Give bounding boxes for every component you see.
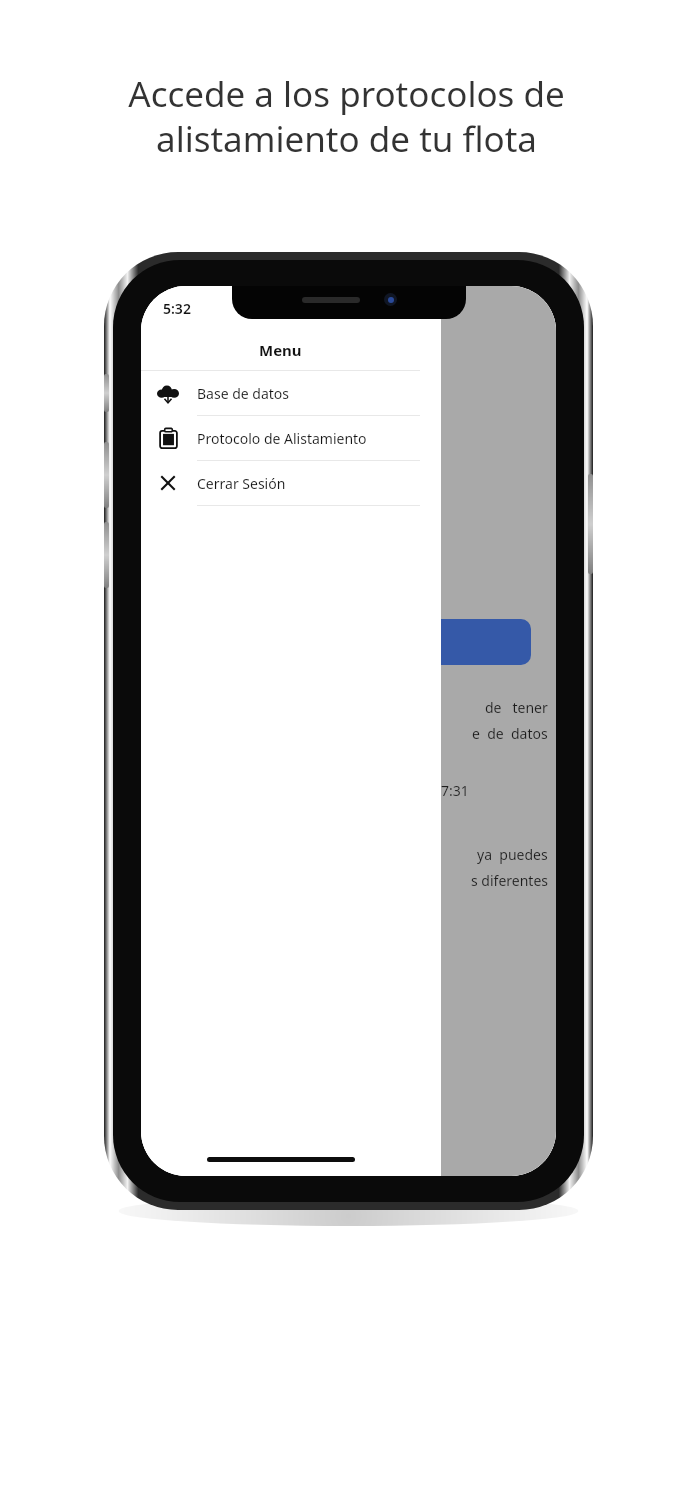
other: Cerrar Sesión — [155, 470, 181, 496]
button[interactable]: Protocolo de Alistamiento — [141, 416, 420, 461]
staticText: de tener — [485, 698, 548, 717]
button[interactable] — [441, 619, 531, 665]
other: Base de datos — [155, 380, 181, 406]
staticText: Cerrar Sesión — [197, 474, 286, 493]
staticText: 5:32 — [163, 299, 191, 318]
staticText: Base de datos — [197, 384, 290, 403]
button[interactable]: Cerrar Sesión — [141, 461, 420, 506]
staticText: 7:31 — [441, 781, 469, 800]
staticText: Menu — [259, 340, 302, 360]
staticText: ya puedes — [477, 845, 548, 864]
staticText: Protocolo de Alistamiento — [197, 429, 367, 448]
staticText: s diferentes — [471, 871, 548, 890]
other: Protocolo de Alistamiento — [155, 425, 181, 451]
button[interactable]: Base de datos — [141, 371, 420, 416]
staticText: Accede a los protocolos de alistamiento … — [128, 70, 565, 162]
staticText: e de datos — [472, 724, 548, 743]
